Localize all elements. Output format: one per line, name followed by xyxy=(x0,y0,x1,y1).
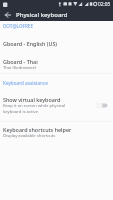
staticText: Keyboard assistance xyxy=(3,80,48,86)
button[interactable]: Show virtual keyboard xyxy=(0,91,113,119)
staticText: DOT@LOFREE xyxy=(3,23,33,29)
staticText: Gboard - English (US) xyxy=(3,40,58,47)
staticText: Keep it on screen while physical keyboar… xyxy=(3,103,77,115)
staticText: Keyboard shortcuts helper xyxy=(3,126,72,133)
staticText: Show virtual keyboard xyxy=(3,96,61,103)
button[interactable]: Keyboard shortcuts helper xyxy=(0,121,113,141)
staticText: Thai (Kedmanee) xyxy=(3,65,37,71)
button[interactable]: Gboard - English (US) xyxy=(0,35,113,52)
staticText: Display available shortcuts xyxy=(3,133,56,139)
button[interactable]: Gboard - Thai xyxy=(0,52,113,72)
button[interactable]: Back xyxy=(2,9,14,21)
staticText: 02:05 xyxy=(98,1,111,8)
staticText: Gboard - Thai xyxy=(3,58,38,65)
button[interactable]: Show virtual keyboard xyxy=(95,101,109,110)
staticText: Physical keyboard xyxy=(16,11,68,19)
